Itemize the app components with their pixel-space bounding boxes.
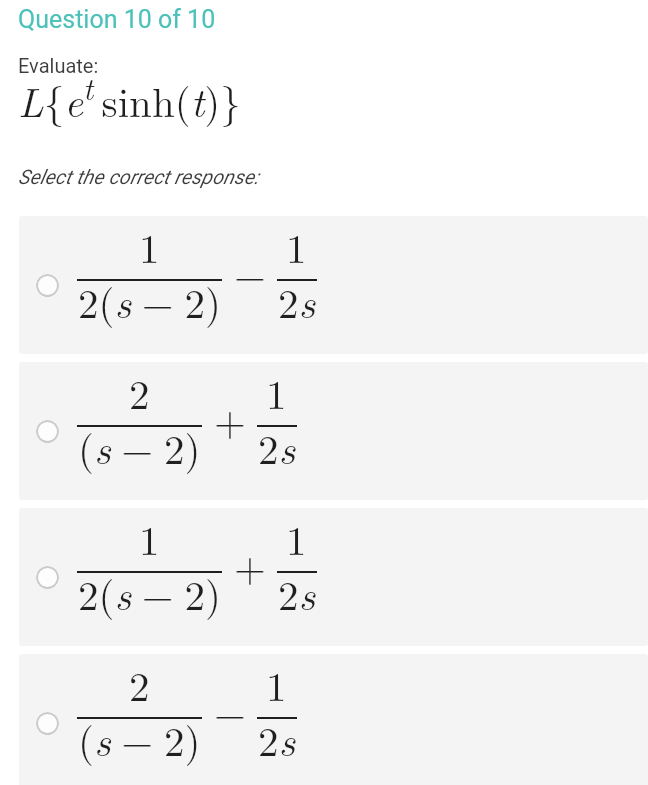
staticText: 2s (258, 418, 296, 476)
staticText: 1 (266, 363, 287, 421)
staticText: + (234, 536, 266, 594)
button[interactable]: Answer C: 1 over 2 open paren s minus 2 … (19, 508, 648, 646)
staticText: Select the correct response: (18, 165, 259, 188)
staticText: 2 (129, 363, 150, 421)
button[interactable]: Answer A: 1 over 2 open paren s minus 2 … (19, 216, 648, 354)
staticText: (s − 2) (78, 710, 201, 768)
staticText: 1 (139, 509, 160, 567)
staticText: Question 10 of 10 (18, 5, 216, 34)
staticText: − (214, 682, 246, 740)
staticText: 2 (129, 655, 150, 713)
staticText: 2(s − 2) (78, 564, 221, 622)
staticText: 1 (286, 509, 307, 567)
staticText: 2s (278, 564, 316, 622)
staticText: (s − 2) (78, 418, 201, 476)
staticText: L{et sinh(t)} (18, 65, 241, 129)
staticText: 1 (139, 217, 160, 275)
button[interactable]: Answer B: 2 over open paren s minus 2 cl… (19, 362, 648, 500)
staticText: 2s (258, 710, 296, 768)
staticText: 1 (286, 217, 307, 275)
button[interactable]: Answer D: 2 over open paren s minus 2 cl… (19, 654, 648, 785)
staticText: Evaluate: (18, 54, 99, 77)
staticText: + (214, 390, 246, 448)
staticText: 1 (266, 655, 287, 713)
staticText: 2(s − 2) (78, 272, 221, 330)
staticText: − (234, 244, 266, 302)
staticText: 2s (278, 272, 316, 330)
